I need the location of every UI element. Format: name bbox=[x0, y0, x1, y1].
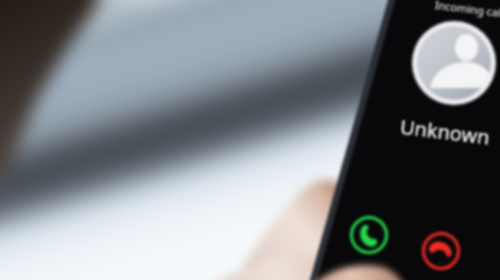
staticText: Unknown bbox=[399, 113, 491, 151]
staticText: Incoming call bbox=[434, 0, 500, 20]
button[interactable]: Incoming call bbox=[0, 0, 500, 280]
button[interactable]: Unknown bbox=[399, 113, 491, 151]
